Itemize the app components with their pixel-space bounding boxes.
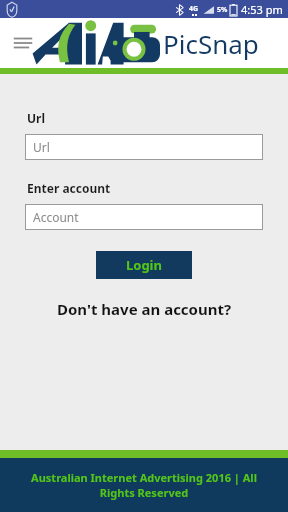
button[interactable]: Url: [25, 134, 263, 160]
staticText: 4:53 pm: [241, 2, 283, 17]
staticText: Url: [27, 110, 46, 126]
staticText: Account: [33, 209, 79, 225]
staticText: 5%: [217, 5, 228, 15]
staticText: PicSnap: [163, 26, 259, 61]
button[interactable]: Account: [25, 204, 263, 230]
staticText: 4G: [189, 4, 199, 14]
button[interactable]: Login: [96, 251, 192, 279]
staticText: Enter account: [27, 180, 111, 196]
staticText: Australian Internet Advertising 2016 | A…: [26, 470, 262, 500]
staticText: Don't have an account?: [57, 299, 232, 319]
button[interactable]: Menu: [8, 28, 38, 58]
button[interactable]: Don't have an account?: [57, 299, 232, 319]
staticText: Login: [126, 256, 162, 274]
staticText: Url: [33, 139, 50, 155]
